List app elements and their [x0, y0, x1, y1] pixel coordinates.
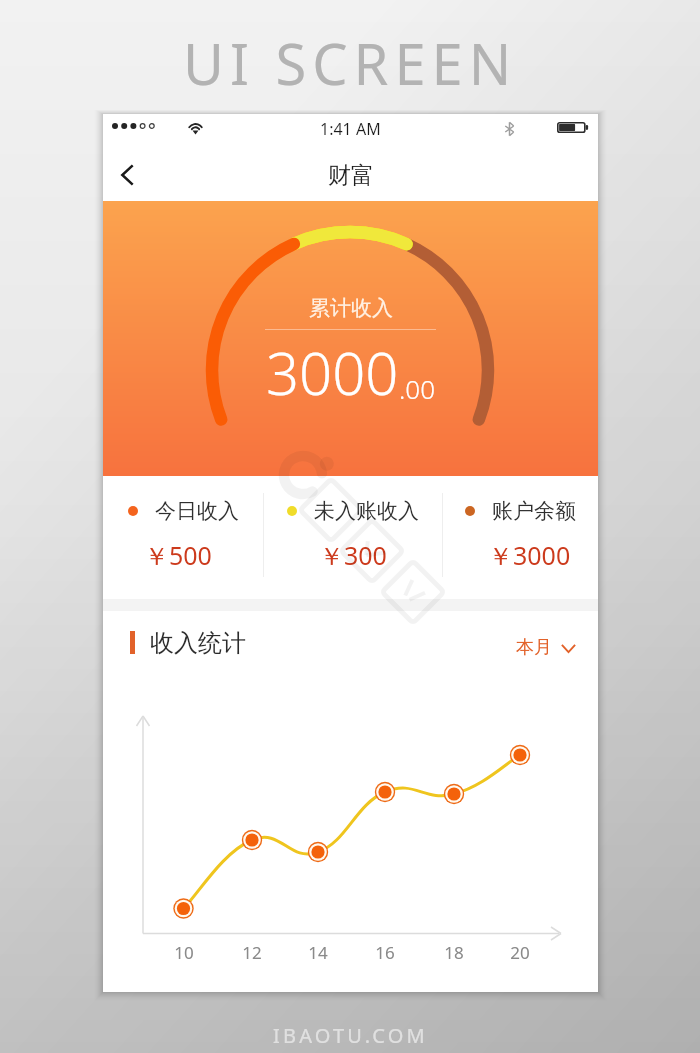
staticText: 未入账收入	[314, 498, 419, 524]
button[interactable]: 收入统计	[129, 628, 244, 658]
staticText: ￥500	[144, 538, 212, 572]
staticText: 财富	[328, 161, 374, 190]
staticText: 1:41 AM	[320, 118, 381, 140]
staticText: 收入统计	[150, 628, 246, 658]
staticText: 10	[170, 941, 198, 964]
button[interactable]: 本月	[516, 636, 576, 659]
staticText: 20	[506, 941, 534, 964]
button[interactable]: 今日收入	[103, 476, 263, 599]
button[interactable]: Back	[104, 152, 150, 198]
staticText: IBAOTU.COM	[273, 1022, 428, 1049]
staticText: 18	[440, 941, 468, 964]
staticText: 今日收入	[155, 498, 239, 524]
button[interactable]: 未入账收入	[264, 476, 442, 599]
staticText: .00	[399, 371, 436, 406]
staticText: UI SCREEN	[183, 25, 518, 101]
staticText: 3000	[266, 333, 399, 412]
staticText: ￥300	[319, 538, 387, 572]
staticText: 14	[304, 941, 332, 964]
staticText: 16	[371, 941, 399, 964]
staticText: 本月	[516, 636, 552, 659]
staticText: 累计收入	[309, 295, 393, 321]
staticText: 12	[238, 941, 266, 964]
staticText: ￥3000	[488, 538, 571, 572]
staticText: 账户余额	[492, 498, 576, 524]
button[interactable]: 账户余额	[443, 476, 598, 599]
